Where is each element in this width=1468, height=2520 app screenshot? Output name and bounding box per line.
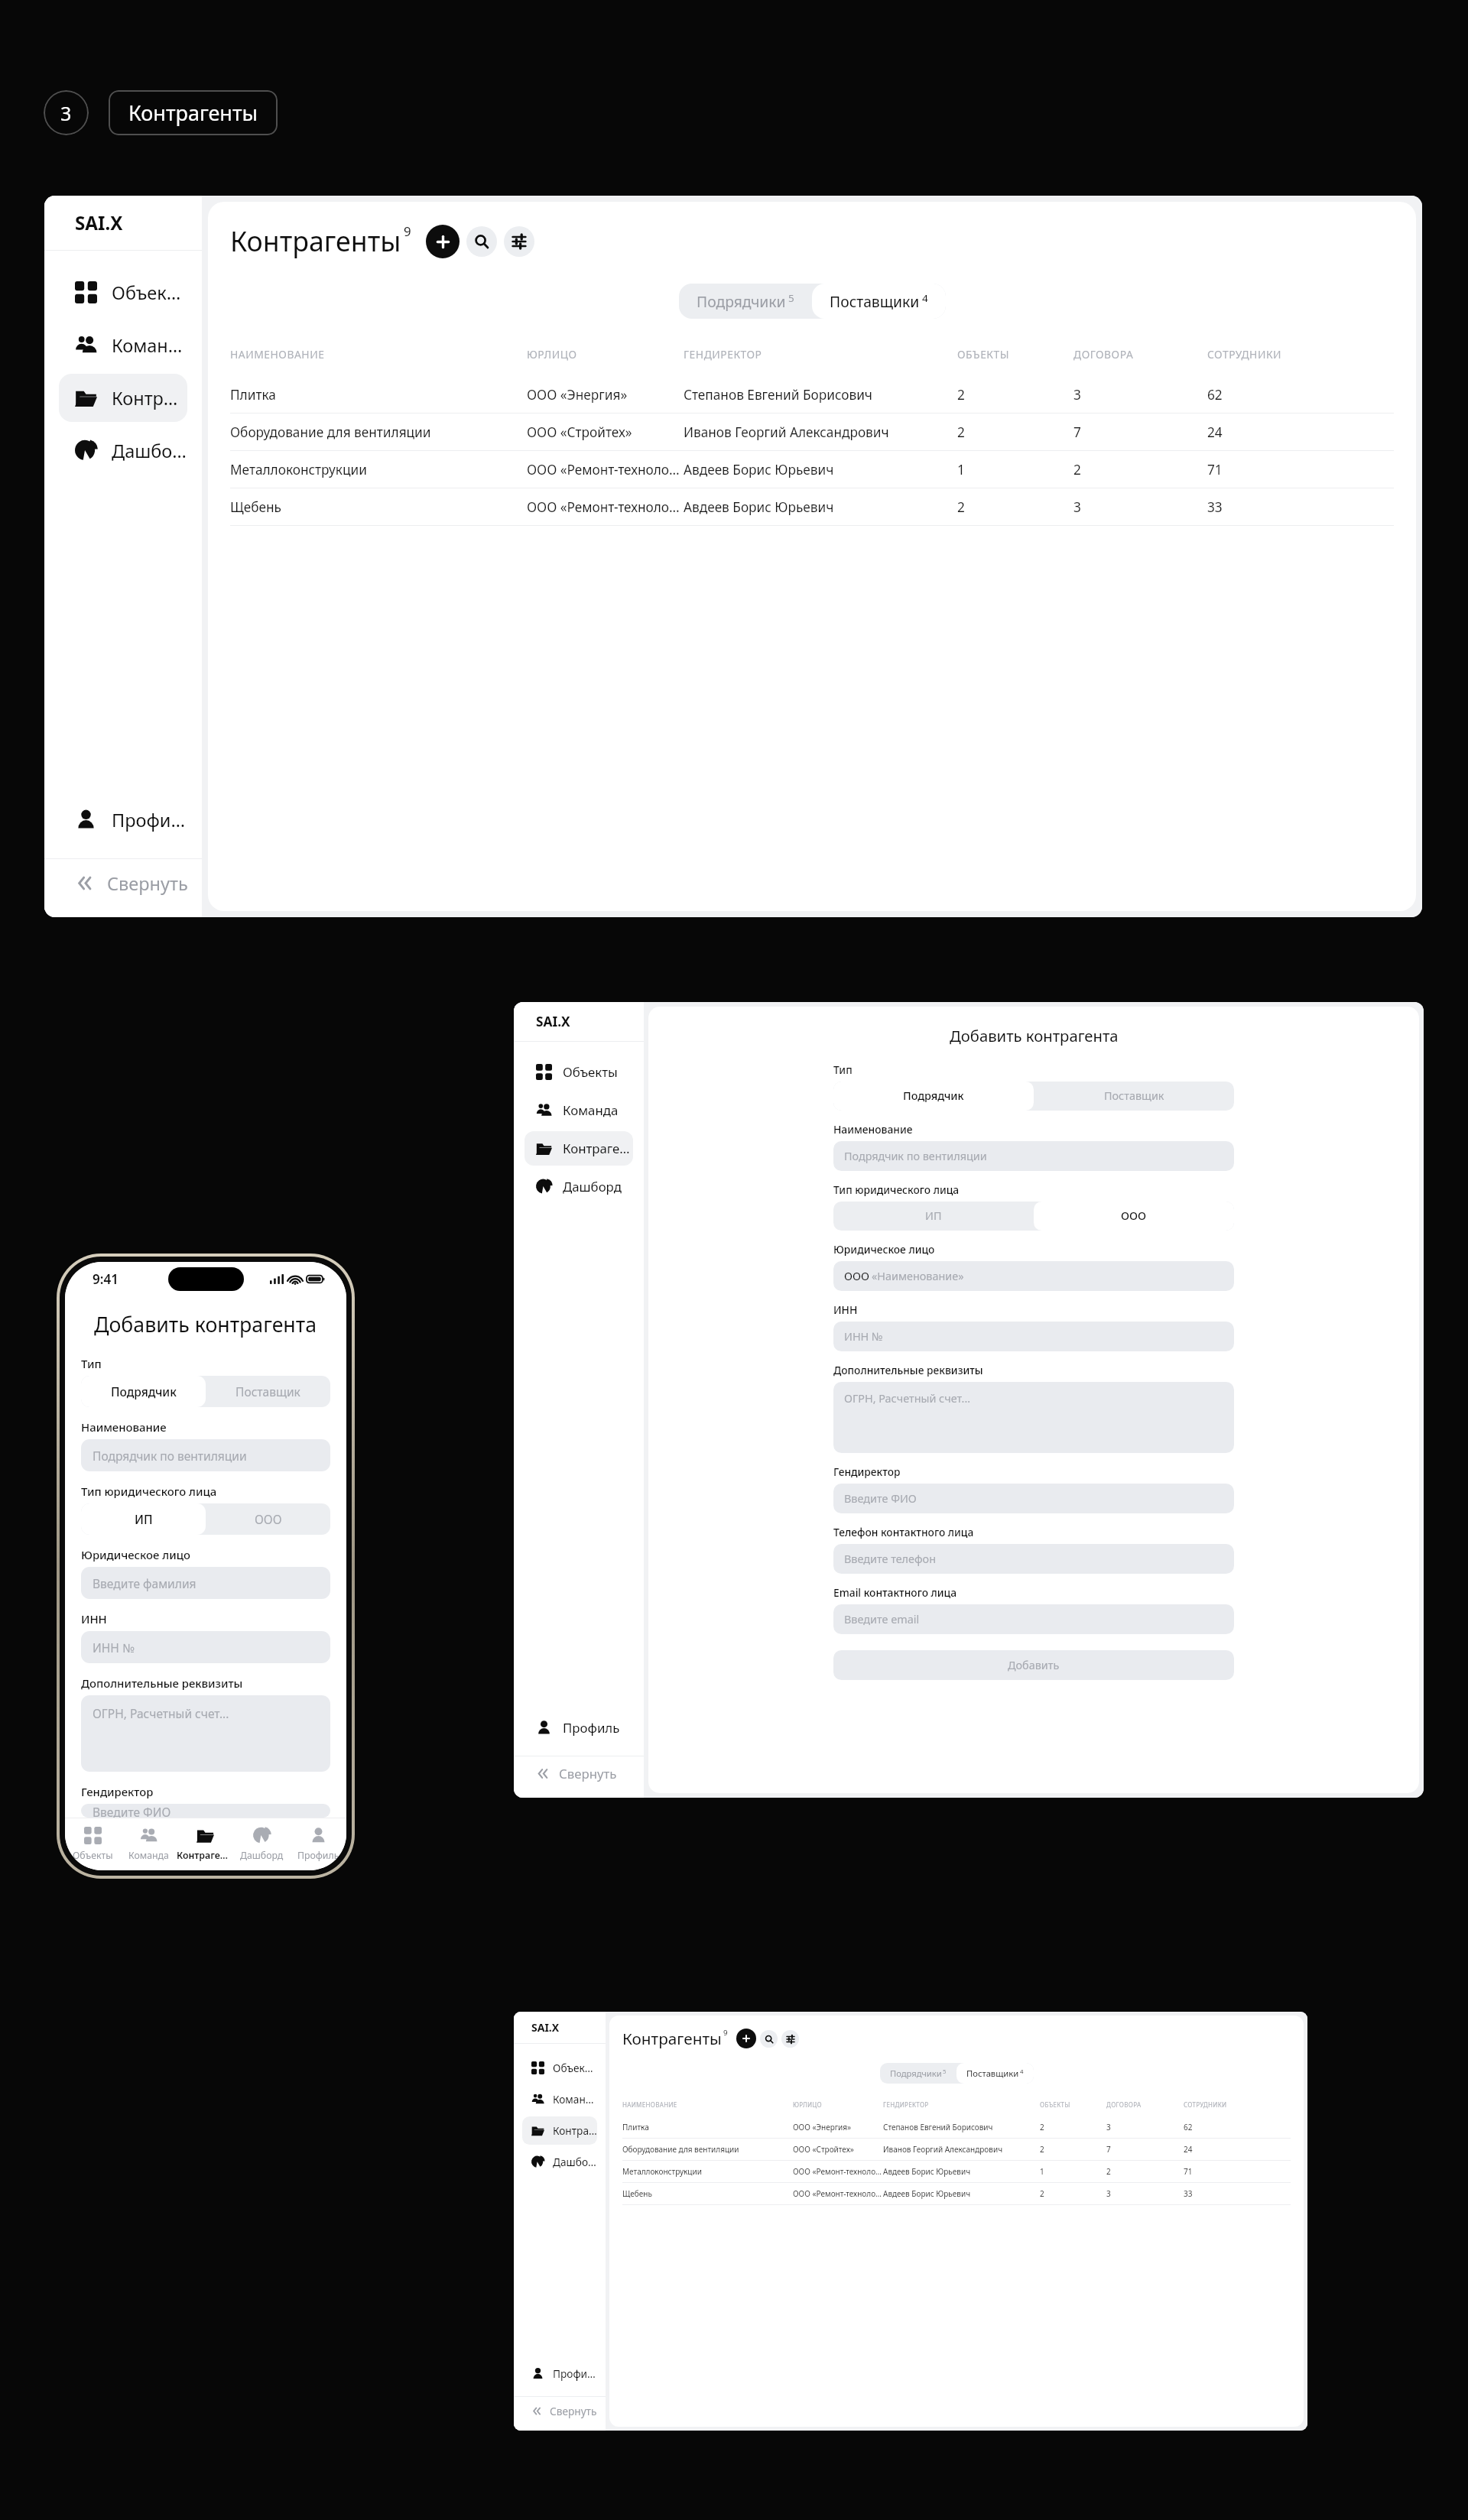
button[interactable]: Дашборд [59, 426, 187, 475]
button[interactable]: Подрядчик [833, 1082, 1034, 1111]
staticText: Команда [563, 1101, 619, 1119]
button[interactable]: Профиль [525, 1711, 633, 1745]
button[interactable]: Поставщики [812, 284, 946, 319]
button[interactable]: ООО [833, 1261, 1234, 1291]
staticText: Тип юридического лица [833, 1182, 960, 1197]
staticText: 7 [1073, 423, 1081, 441]
button[interactable]: Команда [522, 2085, 597, 2113]
button[interactable]: Поиск [760, 2030, 778, 2048]
staticText: Авдеев Борис Юрьевич [883, 2166, 971, 2177]
staticText: Подрядчик по вентиляции [93, 1448, 247, 1464]
button[interactable]: Введите email [833, 1604, 1234, 1634]
button[interactable]: Объекты [522, 2054, 597, 2082]
staticText: Введите ФИО [844, 1491, 917, 1506]
button[interactable]: ИНН № [833, 1322, 1234, 1351]
button[interactable]: ИП [833, 1202, 1034, 1231]
button[interactable]: Команда [525, 1093, 633, 1127]
button[interactable]: Дашборд [233, 1818, 290, 1870]
button[interactable]: Металлоконструкции [609, 2161, 1304, 2182]
button[interactable]: Профиль [522, 2359, 597, 2388]
staticText: 4 [922, 291, 928, 305]
button[interactable]: Контрагенты [109, 90, 278, 135]
staticText: 33 [1207, 498, 1223, 516]
button[interactable]: Объекты [59, 268, 187, 316]
button[interactable]: Команда [121, 1818, 177, 1870]
staticText: 2 [1073, 461, 1081, 478]
button[interactable]: Свернуть [514, 1756, 644, 1791]
button[interactable]: Профиль [290, 1818, 346, 1870]
staticText: Подрядчик [903, 1088, 964, 1104]
button[interactable]: Поставщики [956, 2063, 1034, 2084]
staticText: Введите email [844, 1612, 920, 1627]
button[interactable]: Контрагенты [59, 374, 187, 422]
button[interactable]: Команда [59, 321, 187, 369]
button[interactable]: Введите ФИО [833, 1484, 1234, 1513]
button[interactable]: 3 [44, 90, 89, 135]
button[interactable]: Контрагенты [177, 1818, 233, 1870]
button[interactable]: Добавить [833, 1650, 1234, 1680]
button[interactable]: Оборудование для вентиляции [609, 2139, 1304, 2160]
staticText: 9 [723, 2028, 728, 2038]
button[interactable]: Профиль [59, 796, 187, 844]
button[interactable]: Добавить [736, 2029, 756, 2048]
button[interactable]: Добавить [426, 225, 460, 258]
button[interactable]: Объекты [525, 1055, 633, 1089]
button[interactable]: Подрядчик [81, 1376, 206, 1407]
button[interactable]: ИП [81, 1503, 206, 1535]
staticText: Тип [81, 1356, 102, 1371]
button[interactable]: Металлоконструкции [208, 451, 1416, 488]
staticText: ОГРН, Расчетный счет... [844, 1391, 971, 1406]
staticText: ГЕНДИРЕКТОР [883, 2100, 929, 2109]
button[interactable]: ОГРН, Расчетный счет... [81, 1695, 330, 1772]
staticText: Введите телефон [844, 1552, 936, 1567]
staticText: Дашборд [240, 1849, 284, 1862]
button[interactable]: Подрядчик по вентиляции [81, 1439, 330, 1471]
staticText: ООО «Ремонт-технолог… [527, 498, 684, 516]
staticText: Email контактного лица [833, 1585, 957, 1600]
button[interactable]: Дашборд [525, 1169, 633, 1204]
button[interactable]: Поставщик [1034, 1082, 1234, 1111]
staticText: Телефон контактного лица [833, 1525, 974, 1539]
button[interactable]: Щебень [208, 488, 1416, 525]
button[interactable]: Фильтры [781, 2030, 799, 2048]
button[interactable]: Плитка [208, 376, 1416, 413]
button[interactable]: Свернуть [44, 859, 202, 907]
staticText: ДОГОВОРА [1106, 2100, 1142, 2109]
staticText: ЮРЛИЦО [527, 347, 577, 362]
button[interactable]: Подрядчики [679, 284, 812, 319]
staticText: Контрагенты [112, 386, 187, 410]
staticText: Авдеев Борис Юрьевич [684, 498, 834, 516]
staticText: 1 [1040, 2166, 1044, 2177]
button[interactable]: Оборудование для вентиляции [208, 414, 1416, 450]
button[interactable]: Фильтры [504, 226, 534, 257]
button[interactable]: Введите фамилия [81, 1567, 330, 1599]
button[interactable]: Введите ФИО [81, 1804, 330, 1818]
staticText: Команда [128, 1849, 169, 1862]
button[interactable]: Контрагенты [522, 2116, 597, 2145]
button[interactable]: ООО [206, 1503, 330, 1535]
button[interactable]: Подрядчики [880, 2063, 956, 2084]
button[interactable]: Щебень [609, 2183, 1304, 2204]
button[interactable]: Введите телефон [833, 1544, 1234, 1574]
button[interactable]: Плитка [609, 2116, 1304, 2138]
staticText: Юридическое лицо [81, 1547, 190, 1562]
button[interactable]: Поставщик [206, 1376, 330, 1407]
button[interactable]: Дашборд [522, 2148, 597, 2176]
button[interactable]: Контрагенты [525, 1131, 633, 1166]
button[interactable]: ИНН № [81, 1631, 330, 1663]
button[interactable]: ОГРН, Расчетный счет... [833, 1382, 1234, 1453]
staticText: Плитка [622, 2122, 649, 2132]
staticText: Авдеев Борис Юрьевич [883, 2188, 971, 2199]
staticText: Подрядчики [697, 291, 786, 311]
staticText: 1 [957, 461, 965, 478]
button[interactable]: Свернуть [514, 2397, 606, 2425]
staticText: 2 [957, 498, 965, 516]
button[interactable]: Поиск [466, 226, 497, 257]
staticText: Поставщик [1104, 1088, 1164, 1104]
button[interactable]: Подрядчик по вентиляции [833, 1141, 1234, 1171]
staticText: Контрагенты [563, 1140, 633, 1157]
staticText: 5 [943, 2068, 947, 2076]
staticText: Поставщик [235, 1383, 300, 1399]
button[interactable]: ООО [1034, 1202, 1234, 1231]
button[interactable]: Объекты [65, 1818, 121, 1870]
